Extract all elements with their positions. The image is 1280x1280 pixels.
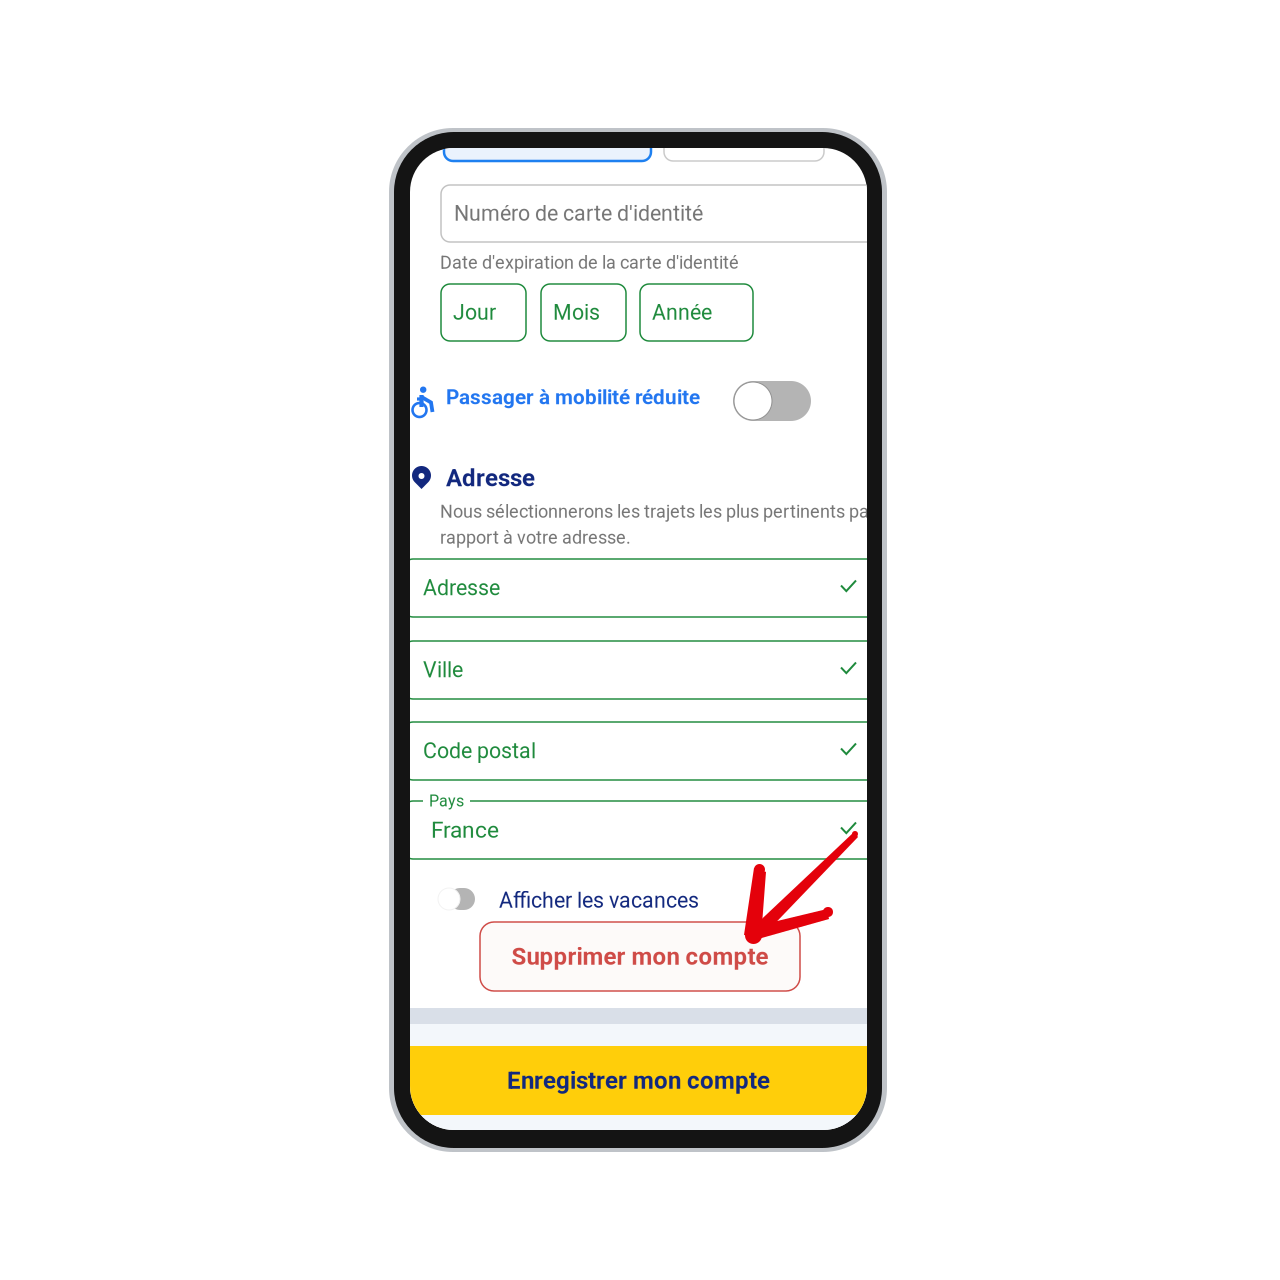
button[interactable]: Passager à mobilité réduite bbox=[733, 381, 811, 421]
staticText: Adresse bbox=[446, 464, 535, 492]
staticText: Pays bbox=[429, 792, 464, 810]
button[interactable]: Afficher les vacances bbox=[438, 888, 486, 910]
button[interactable]: Code postal bbox=[404, 722, 894, 780]
staticText: Passager à mobilité réduite bbox=[446, 385, 700, 409]
staticText: Supprimer mon compte bbox=[511, 942, 768, 970]
staticText: Enregistrer mon compte bbox=[507, 1066, 770, 1094]
button[interactable]: Année bbox=[640, 284, 753, 341]
staticText: France bbox=[431, 817, 499, 843]
button[interactable]: Adresse bbox=[404, 559, 894, 617]
button[interactable]: France bbox=[404, 801, 894, 859]
button[interactable]: Carte d'identité bbox=[444, 131, 651, 161]
staticText: Année bbox=[652, 300, 712, 325]
staticText: Numéro de carte d'identité bbox=[454, 201, 703, 226]
button[interactable]: Mois bbox=[541, 284, 626, 341]
staticText: Code postal bbox=[423, 738, 536, 763]
staticText: Jour bbox=[453, 300, 496, 325]
staticText: Mois bbox=[553, 300, 600, 325]
button[interactable]: Jour bbox=[441, 284, 526, 341]
staticText: Nous sélectionnerons les trajets les plu… bbox=[440, 501, 875, 522]
button[interactable]: Enregistrer mon compte bbox=[410, 1046, 867, 1115]
staticText: Ville bbox=[423, 657, 463, 682]
staticText: rapport à votre adresse. bbox=[440, 527, 631, 548]
button[interactable]: Passeport bbox=[664, 131, 824, 161]
staticText: Adresse bbox=[423, 575, 500, 600]
staticText: Afficher les vacances bbox=[499, 888, 699, 913]
button[interactable]: Numéro de carte d'identité bbox=[441, 185, 906, 242]
button[interactable]: Ville bbox=[404, 641, 894, 699]
button[interactable]: Supprimer mon compte bbox=[480, 922, 800, 991]
staticText: Date d'expiration de la carte d'identité bbox=[440, 252, 739, 273]
